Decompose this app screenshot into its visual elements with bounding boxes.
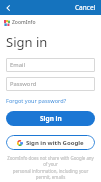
button[interactable]: Email xyxy=(6,58,95,72)
staticText: Forgot your password? xyxy=(6,97,67,105)
staticText: Sign in xyxy=(6,33,48,51)
button[interactable]: Password xyxy=(6,77,95,91)
staticText: Email xyxy=(10,61,25,69)
staticText: Cancel xyxy=(75,3,96,12)
staticText: Sign in xyxy=(40,114,62,123)
staticText: ZoomInfo xyxy=(12,19,36,26)
staticText: personal information, including your per… xyxy=(6,168,95,180)
button[interactable]: Cancel xyxy=(70,1,101,14)
staticText: Password xyxy=(10,80,37,88)
button[interactable]: Forgot your password? xyxy=(6,97,67,105)
staticText: ZoomInfo does not share with Google any … xyxy=(6,155,95,167)
button[interactable]: Sign in with Google xyxy=(6,135,95,150)
button[interactable]: Sign in xyxy=(6,111,95,126)
button[interactable]: Back xyxy=(3,2,14,13)
staticText: Sign in with Google xyxy=(26,139,84,147)
